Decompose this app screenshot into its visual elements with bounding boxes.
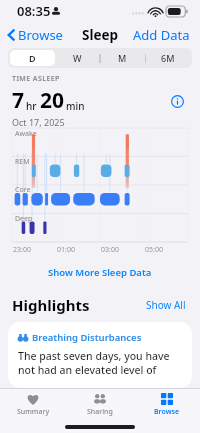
staticText: TIME ASLEEP — [12, 74, 60, 84]
staticText: Sharing — [87, 407, 113, 417]
staticText: Sleep — [82, 26, 119, 44]
staticText: The past seven days, you have not had an… — [18, 349, 182, 379]
button[interactable]: Browse — [133, 389, 200, 421]
staticText: M — [118, 52, 127, 64]
staticText: Summary — [17, 407, 50, 417]
staticText: Show More Sleep Data — [48, 266, 152, 279]
staticText: min — [66, 99, 85, 113]
staticText: Deep — [15, 214, 33, 224]
staticText: Oct 17, 2025 — [12, 116, 65, 128]
staticText: 05:00 — [145, 245, 163, 255]
staticText: hr — [26, 99, 37, 113]
staticText: Core — [15, 185, 31, 195]
button[interactable]: Add Data — [123, 23, 200, 47]
staticText: REM — [15, 157, 30, 167]
button[interactable]: Info — [167, 91, 188, 112]
button[interactable]: W — [55, 50, 100, 66]
staticText: Show All — [146, 298, 186, 312]
staticText: Highlights — [12, 295, 90, 315]
staticText: Awake — [15, 129, 37, 139]
button[interactable]: Show More Sleep Data — [0, 264, 200, 281]
button[interactable]: Browse — [0, 23, 69, 47]
staticText: 6M — [161, 52, 175, 64]
staticText: 23:00 — [13, 245, 31, 255]
staticText: 08:35 — [17, 2, 51, 20]
staticText: W — [73, 52, 82, 64]
button[interactable]: Sharing — [66, 389, 133, 421]
staticText: 01:00 — [57, 245, 75, 255]
button[interactable]: Summary — [0, 389, 66, 421]
button[interactable]: D — [10, 50, 55, 66]
button[interactable]: M — [100, 50, 145, 66]
staticText: 7 — [12, 86, 25, 115]
staticText: 03:00 — [101, 245, 119, 255]
staticText: Add Data — [133, 26, 190, 44]
staticText: Browse — [154, 407, 180, 417]
staticText: D — [29, 52, 36, 64]
button[interactable]: 6M — [145, 50, 190, 66]
staticText: Browse — [18, 26, 63, 44]
staticText: Breathing Disturbances — [32, 331, 142, 344]
button[interactable]: Breathing Disturbances — [8, 322, 192, 388]
button[interactable]: Show All — [144, 296, 188, 314]
staticText: 20 — [40, 86, 65, 115]
